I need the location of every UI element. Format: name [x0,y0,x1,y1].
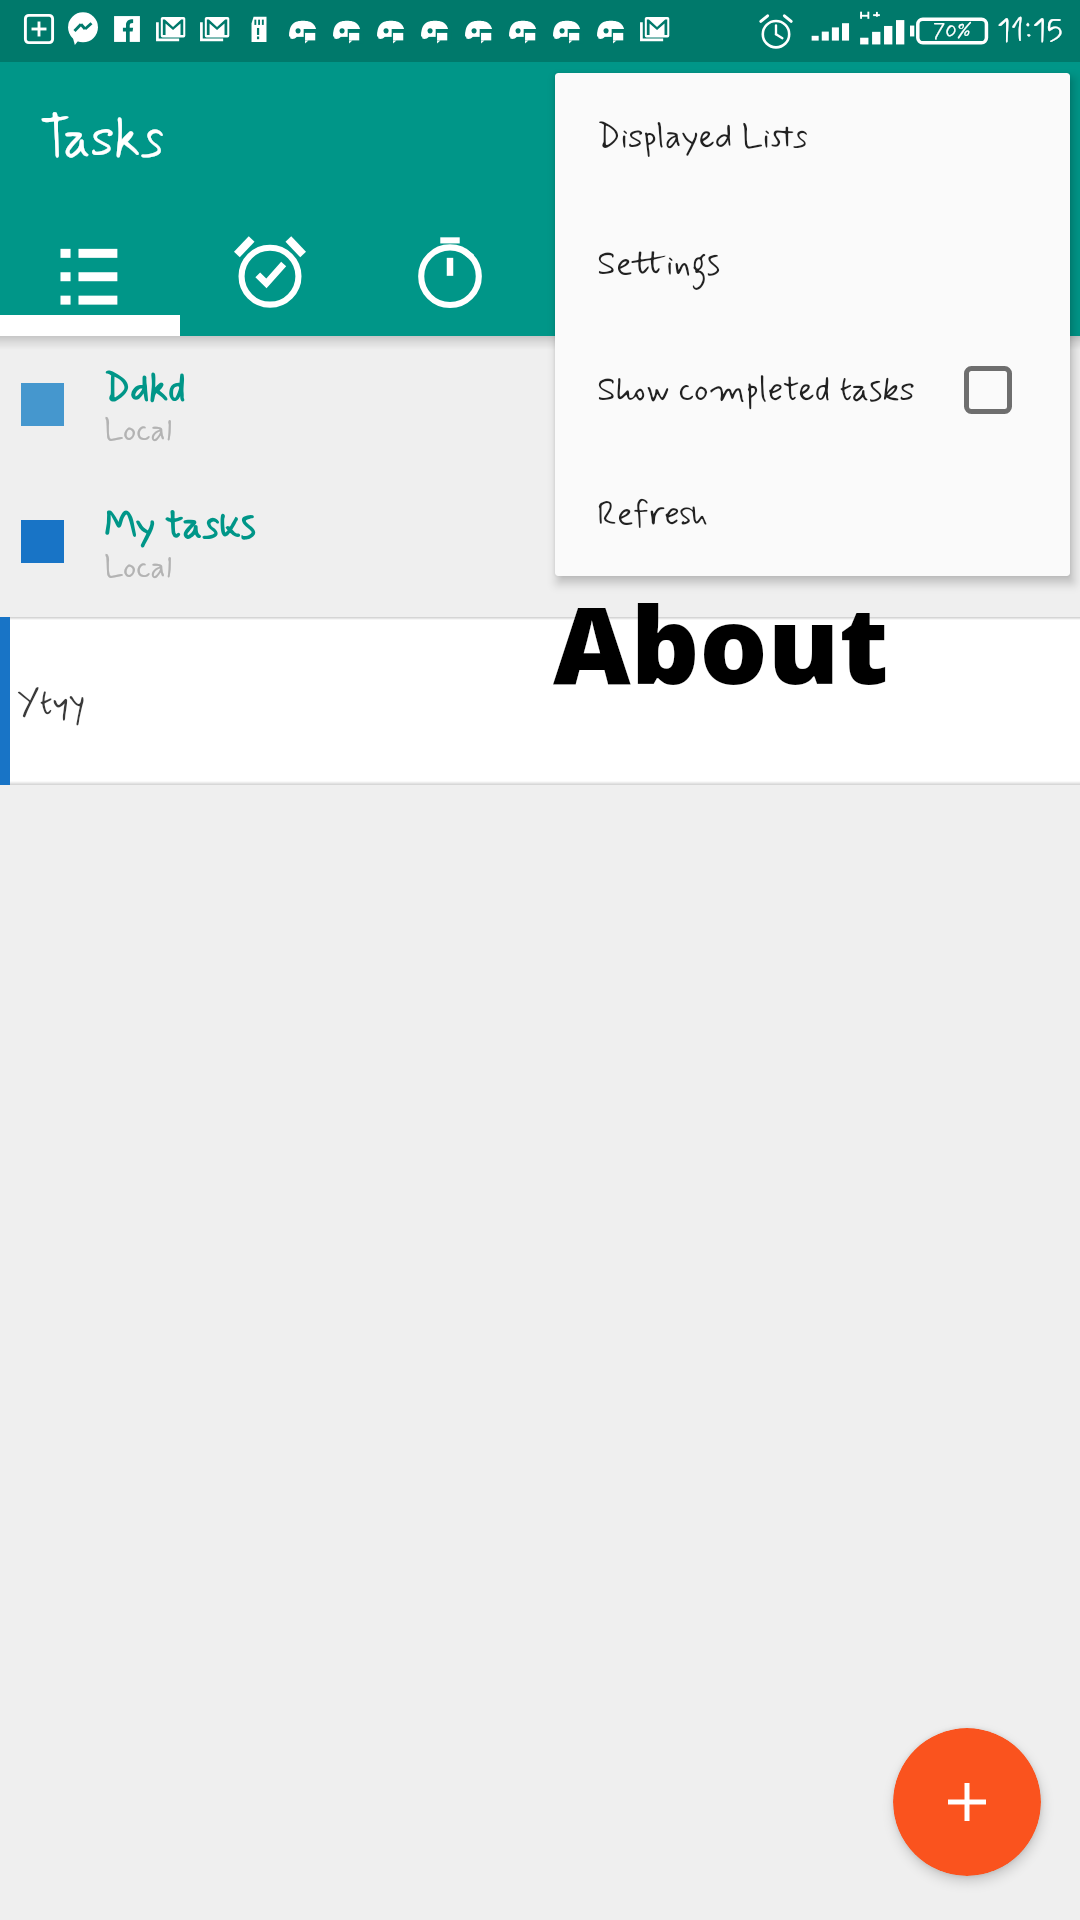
staticText: Tasks [40,106,164,175]
button[interactable]: Refresh [555,453,1070,576]
staticText: Ytyy [17,681,86,727]
staticText: Ddkd [104,365,186,415]
staticText: Settings [597,242,721,287]
staticText: 11:15 [997,11,1063,52]
button[interactable]: Displayed Lists [555,73,1070,201]
button[interactable]: Ddkd [0,336,1080,473]
staticText: 70% [933,18,972,44]
button[interactable]: Ytyy [0,617,1080,785]
button[interactable]: Alarms [180,176,360,336]
button[interactable]: Show completed tasks [555,327,1070,453]
button[interactable]: Add task [893,1728,1041,1876]
button[interactable]: Settings [555,201,1070,327]
staticText: Local [104,548,172,589]
staticText: Local [104,411,172,452]
button[interactable]: Timers [360,176,540,336]
staticText: Refresh [597,492,709,537]
staticText: Show completed tasks [597,368,964,413]
button[interactable]: Lists [0,176,180,336]
staticText: Displayed Lists [597,115,808,160]
staticText: About [553,570,889,716]
button[interactable]: My tasks [0,473,1080,610]
staticText: My tasks [104,502,256,552]
